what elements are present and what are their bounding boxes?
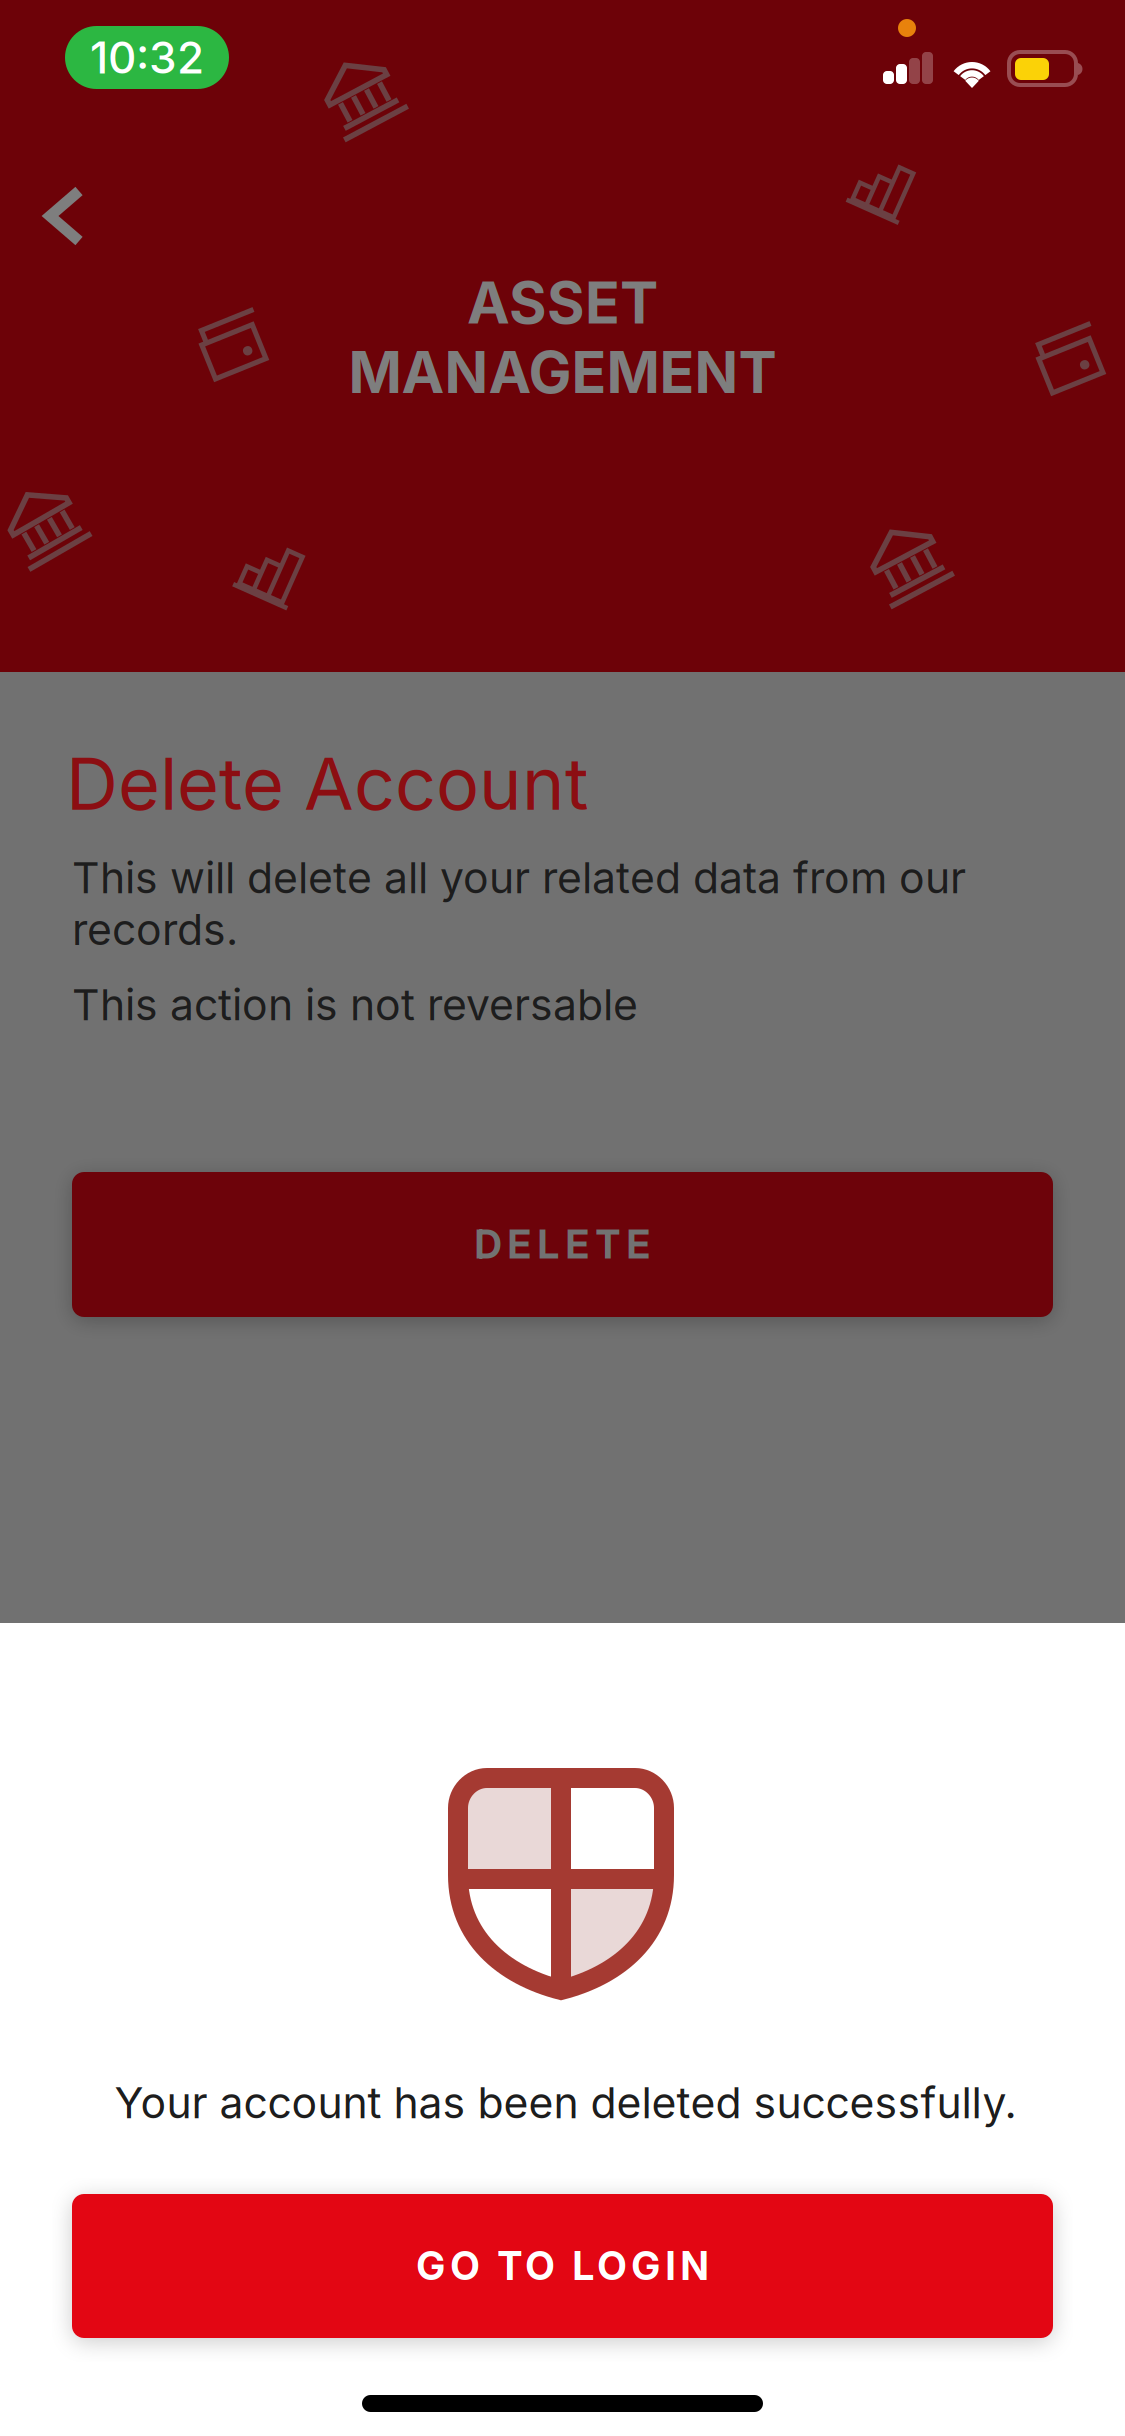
- staticText: 10:32: [90, 31, 204, 84]
- staticText: Your account has been deleted successful…: [114, 2077, 1016, 2129]
- staticText: DELETE: [474, 1221, 650, 1268]
- button[interactable]: GO TO LOGIN: [72, 2194, 1053, 2338]
- staticText: MANAGEMENT: [348, 337, 776, 407]
- button[interactable]: Back: [26, 165, 130, 267]
- staticText: Delete Account: [66, 740, 589, 827]
- staticText: ASSET: [467, 268, 658, 337]
- staticText: GO TO LOGIN: [416, 2243, 708, 2289]
- staticText: This action is not reversable: [72, 979, 638, 1031]
- staticText: This will delete all your related data f…: [72, 852, 966, 955]
- button[interactable]: DELETE: [72, 1172, 1053, 1317]
